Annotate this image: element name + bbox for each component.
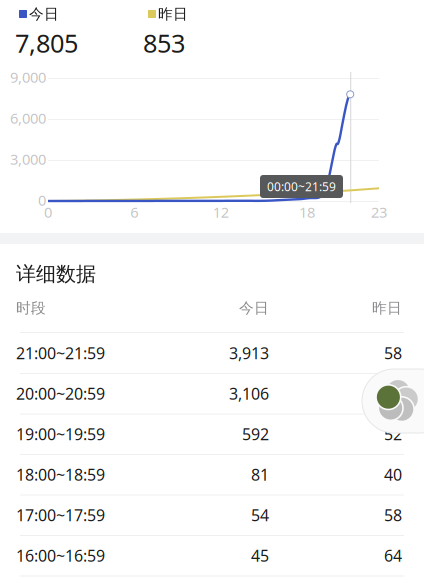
staticText: 详细数据 — [16, 262, 96, 286]
staticText: 16:00~16:59 — [16, 545, 105, 566]
staticText: 6,000 — [10, 108, 46, 128]
staticText: 7,805 — [15, 26, 78, 60]
staticText: 52 — [384, 383, 402, 404]
button[interactable]: 18:00~18:59 — [0, 0, 424, 40]
button[interactable]: 19:00~19:59 — [0, 0, 424, 40]
button[interactable]: 20:00~20:59 — [0, 0, 424, 40]
staticText: 0 — [44, 202, 52, 222]
staticText: 54 — [251, 504, 269, 526]
staticText: 今日 — [29, 5, 59, 23]
staticText: 52 — [384, 423, 402, 445]
button[interactable]: 16:00~16:59 — [0, 0, 424, 40]
staticText: 3,106 — [229, 383, 269, 404]
staticText: 592 — [242, 423, 269, 445]
staticText: 58 — [384, 504, 402, 526]
button[interactable]: Assistant — [362, 369, 424, 433]
staticText: 58 — [384, 342, 402, 364]
staticText: 00:00~21:59 — [267, 178, 336, 194]
button[interactable]: 21:00~21:59 — [0, 0, 424, 40]
staticText: 昨日 — [372, 299, 402, 317]
staticText: 21:00~21:59 — [16, 342, 105, 364]
staticText: 6 — [130, 202, 138, 222]
staticText: 19:00~19:59 — [16, 423, 105, 445]
staticText: 时段 — [16, 299, 46, 317]
button[interactable]: 17:00~17:59 — [0, 0, 424, 40]
staticText: 9,000 — [10, 67, 46, 87]
staticText: 3,913 — [229, 342, 269, 364]
staticText: 3,000 — [10, 149, 46, 169]
staticText: 853 — [143, 26, 185, 60]
staticText: 18 — [299, 202, 315, 222]
staticText: 40 — [384, 464, 402, 485]
staticText: 81 — [251, 464, 269, 485]
staticText: 18:00~18:59 — [16, 464, 105, 485]
staticText: 昨日 — [158, 5, 188, 23]
staticText: 12 — [213, 202, 229, 222]
staticText: 0 — [38, 190, 46, 210]
staticText: 45 — [251, 545, 269, 566]
staticText: 64 — [384, 545, 402, 566]
staticText: 23 — [371, 202, 387, 222]
staticText: 17:00~17:59 — [16, 504, 105, 526]
staticText: 今日 — [239, 299, 269, 317]
staticText: 20:00~20:59 — [16, 383, 105, 404]
